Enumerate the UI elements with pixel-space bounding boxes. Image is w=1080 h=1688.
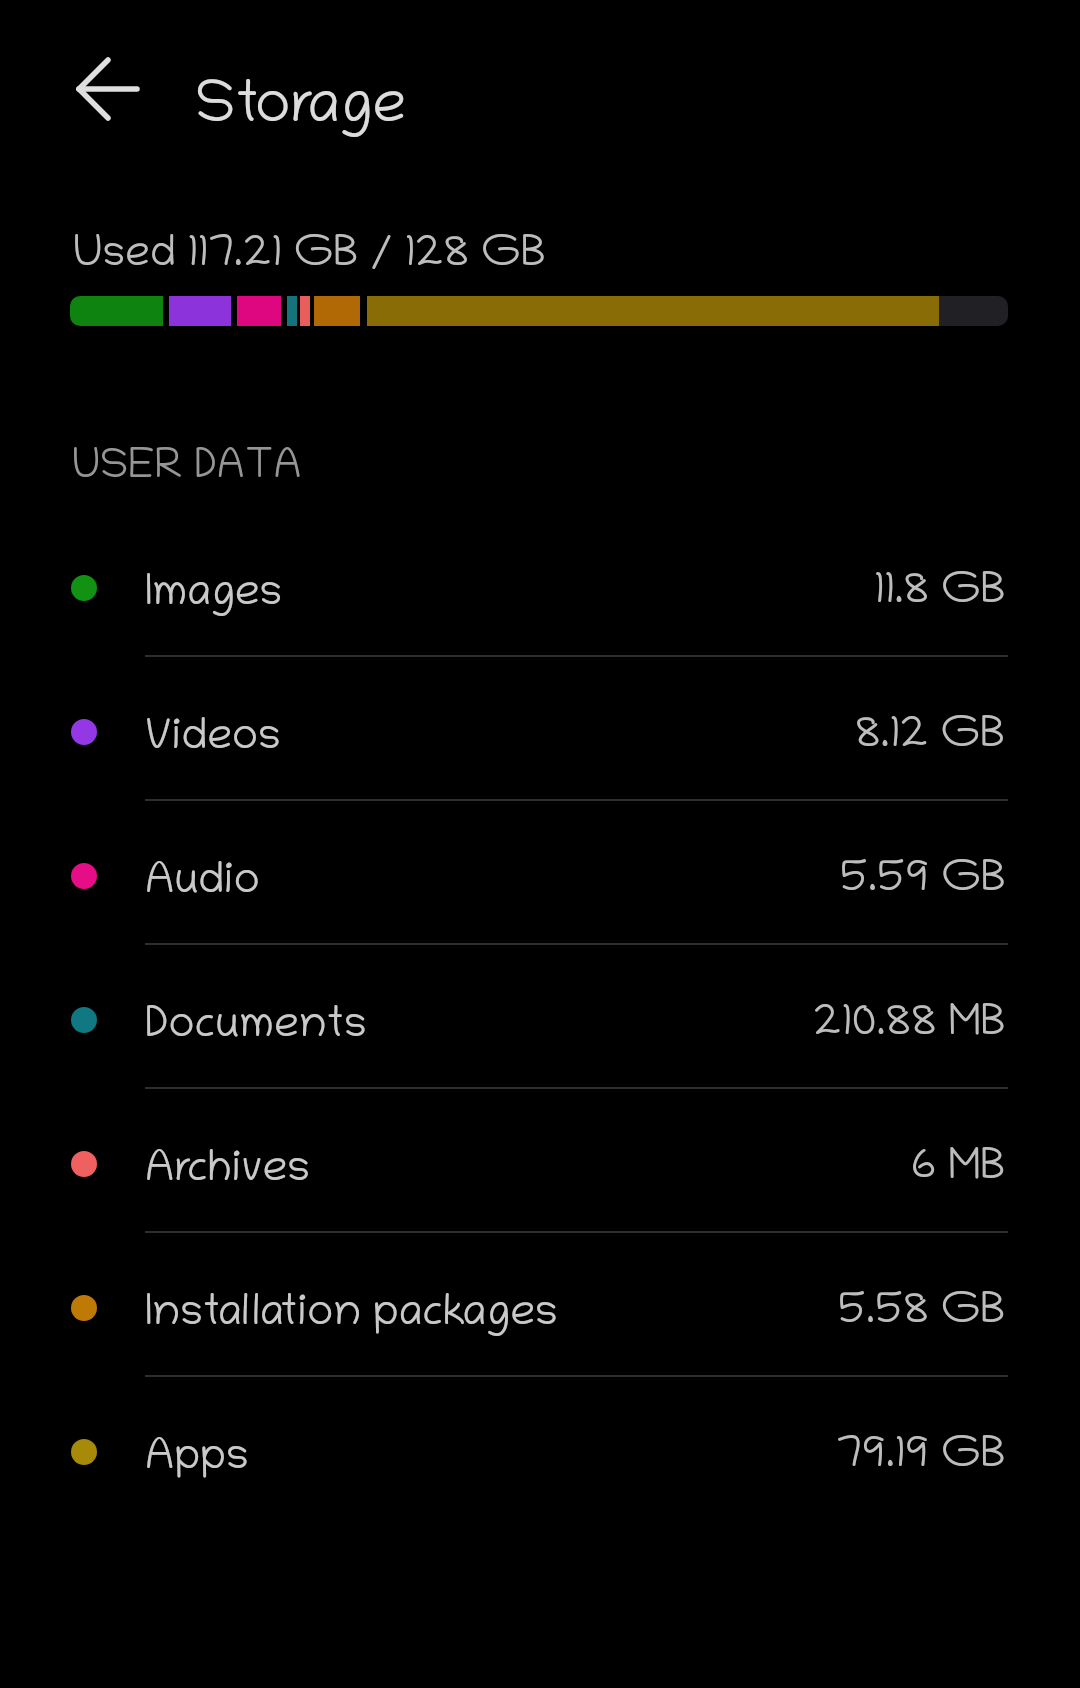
staticText: 5.58 GB — [838, 1290, 1006, 1338]
button[interactable]: Apps — [0, 1380, 1080, 1524]
staticText: 79.19 GB — [836, 1434, 1006, 1482]
staticText: 5.59 GB — [840, 858, 1006, 906]
staticText: Archives — [145, 1148, 310, 1196]
button[interactable]: Audio — [0, 804, 1080, 948]
staticText: Videos — [145, 716, 281, 764]
staticText: 8.12 GB — [855, 714, 1006, 762]
button[interactable]: Installation packages — [0, 1236, 1080, 1380]
staticText: Documents — [145, 1004, 367, 1052]
staticText: Apps — [145, 1436, 249, 1484]
staticText: Images — [145, 572, 283, 620]
staticText: Storage — [195, 77, 407, 143]
staticText: Installation packages — [145, 1292, 558, 1340]
button[interactable]: Images — [0, 516, 1080, 660]
staticText: Audio — [145, 860, 260, 908]
staticText: USER DATA — [72, 446, 302, 492]
button[interactable]: Archives — [0, 1092, 1080, 1236]
staticText: 11.8 GB — [874, 570, 1006, 618]
staticText: 210.88 MB — [813, 1002, 1006, 1050]
staticText: 6 MB — [911, 1146, 1006, 1194]
button[interactable]: Videos — [0, 660, 1080, 804]
button[interactable]: Documents — [0, 948, 1080, 1092]
button[interactable] — [56, 46, 142, 132]
staticText: Used 117.21 GB / 128 GB — [73, 233, 546, 281]
